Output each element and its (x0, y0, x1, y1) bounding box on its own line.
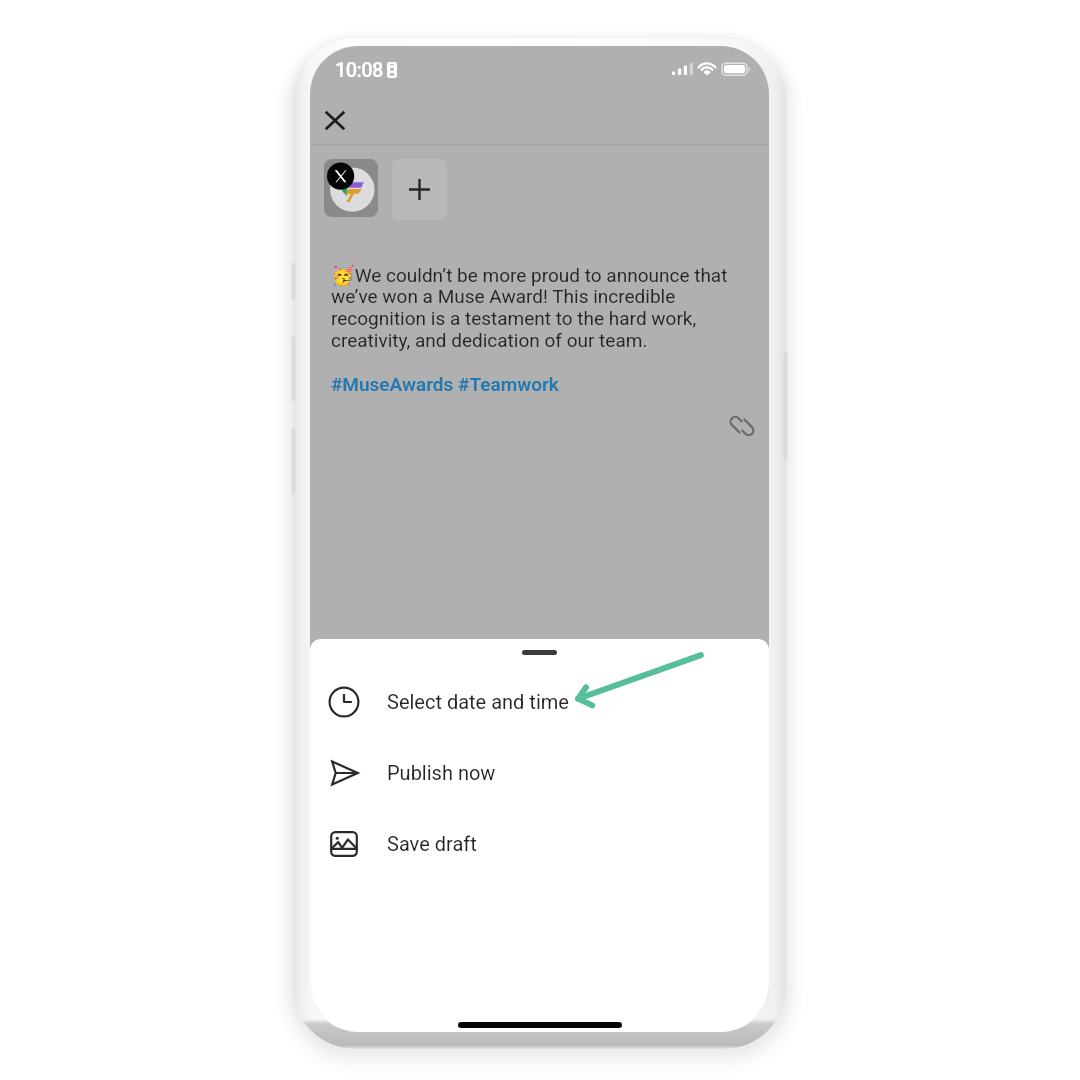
button[interactable]: Save draft (310, 808, 769, 879)
button[interactable]: Link (721, 406, 762, 446)
staticText: Save draft (387, 832, 477, 855)
staticText: Publish now (387, 761, 496, 784)
button[interactable]: X account (324, 159, 378, 217)
button[interactable]: Close (312, 99, 357, 142)
button[interactable]: Add account (392, 159, 447, 220)
staticText: Select date and time (387, 690, 569, 713)
staticText: 10:08 (335, 58, 383, 81)
button[interactable]: Select date and time (310, 666, 769, 737)
staticText: 🥳We couldn’t be more proud to announce t… (331, 264, 743, 352)
staticText: #MuseAwards #Teamwork (331, 373, 559, 395)
button[interactable]: Publish now (310, 737, 769, 808)
